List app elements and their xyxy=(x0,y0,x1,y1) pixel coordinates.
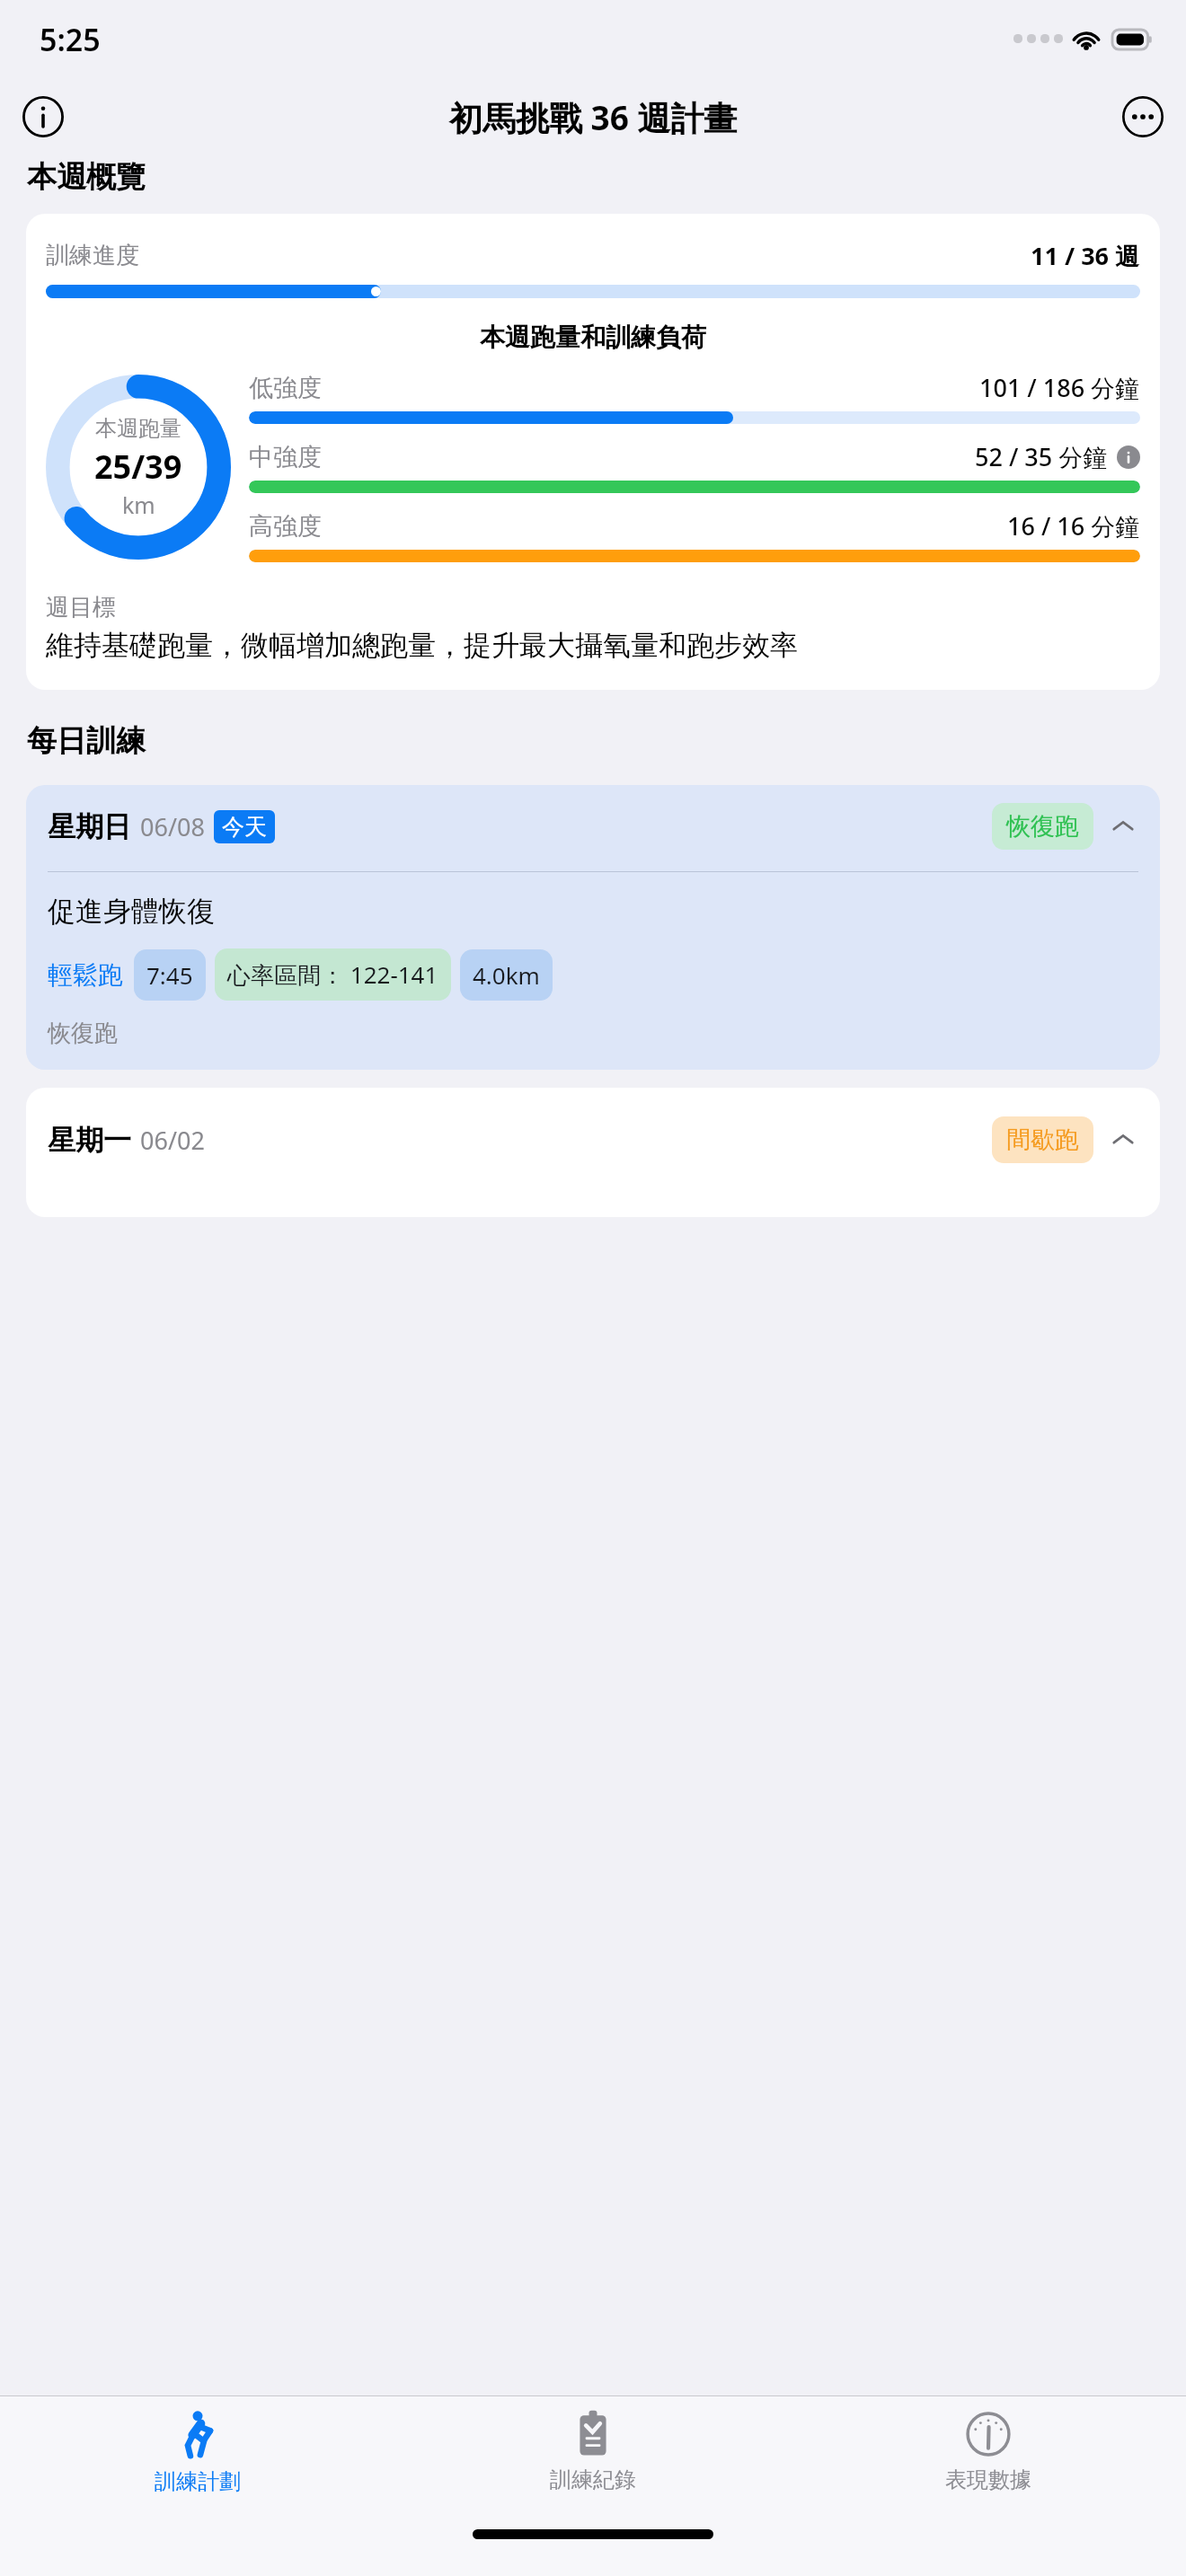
button[interactable]: 星期日 xyxy=(26,785,1160,1070)
staticText: 今天 xyxy=(222,813,267,841)
staticText: 7:45 xyxy=(146,959,193,991)
button[interactable]: 訓練計劃 xyxy=(0,2396,395,2529)
staticText: 5:25 xyxy=(40,19,101,60)
button[interactable]: 訓練進度 xyxy=(26,214,1160,690)
staticText: 每日訓練 xyxy=(27,722,146,760)
staticText: 11 / 36 週 xyxy=(1031,239,1140,272)
staticText: 中強度 xyxy=(249,442,322,472)
button[interactable]: More options xyxy=(1116,90,1170,144)
button[interactable]: Collapse xyxy=(1108,811,1138,842)
staticText: km xyxy=(122,490,155,520)
staticText: 訓練計劃 xyxy=(155,2468,241,2495)
staticText: 高強度 xyxy=(249,511,322,542)
button[interactable]: 表現數據 xyxy=(791,2396,1186,2529)
staticText: 星期日 xyxy=(48,809,131,844)
staticText: 本週跑量和訓練負荷 xyxy=(46,322,1140,353)
button[interactable]: 星期一 xyxy=(26,1088,1160,1217)
staticText: 101 / 186 分鐘 xyxy=(979,371,1140,404)
staticText: 4.0km xyxy=(473,959,540,991)
staticText: 本週概覽 xyxy=(27,158,146,196)
staticText: 16 / 16 分鐘 xyxy=(1007,509,1140,543)
button[interactable]: 訓練紀錄 xyxy=(395,2396,791,2529)
staticText: 心率區間： 122-141 xyxy=(227,958,438,991)
staticText: 本週跑量 xyxy=(95,415,181,442)
staticText: 06/02 xyxy=(140,1124,205,1157)
staticText: 輕鬆跑 xyxy=(48,959,123,991)
staticText: 06/08 xyxy=(140,810,205,843)
staticText: 初馬挑戰 36 週計畫 xyxy=(449,94,738,140)
staticText: 週目標 xyxy=(46,593,116,622)
button[interactable]: Information xyxy=(16,90,70,144)
staticText: 25/39 xyxy=(94,445,182,489)
button[interactable]: Collapse xyxy=(1108,1125,1138,1155)
staticText: 恢復跑 xyxy=(1006,811,1079,842)
staticText: 表現數據 xyxy=(945,2466,1031,2493)
staticText: 間歇跑 xyxy=(1006,1125,1079,1155)
staticText: 促進身體恢復 xyxy=(48,894,215,929)
staticText: 訓練紀錄 xyxy=(550,2466,636,2493)
staticText: 低強度 xyxy=(249,373,322,403)
staticText: 星期一 xyxy=(48,1123,131,1158)
button[interactable]: Info xyxy=(1117,446,1140,469)
staticText: 維持基礎跑量，微幅增加總跑量，提升最大攝氧量和跑步效率 xyxy=(46,628,1140,663)
staticText: 訓練進度 xyxy=(46,241,139,270)
staticText: 52 / 35 分鐘 xyxy=(975,440,1108,473)
staticText: 恢復跑 xyxy=(48,1019,118,1048)
